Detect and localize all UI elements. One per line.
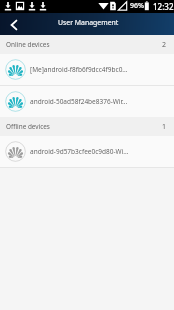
staticText: 96%: [130, 1, 144, 11]
staticText: android-50ad58f24be8376-Wir...: [30, 97, 128, 106]
button[interactable]: android-9d57b3cfee0c9d80-Wi...: [0, 136, 174, 167]
staticText: 1: [162, 122, 167, 132]
staticText: [Me]android-f8fb6f9dcc4f9bc0...: [30, 65, 128, 74]
staticText: 12:32: [153, 1, 174, 12]
staticText: User Management: [58, 18, 119, 27]
button[interactable]: [Me]android-f8fb6f9dcc4f9bc0...: [0, 54, 174, 85]
button[interactable]: android-50ad58f24be8376-Wir...: [0, 86, 174, 117]
staticText: Online devices: [6, 40, 50, 49]
staticText: Offline devices: [6, 122, 50, 131]
button[interactable]: Back: [0, 13, 26, 35]
staticText: 2: [162, 40, 167, 50]
staticText: android-9d57b3cfee0c9d80-Wi...: [30, 147, 129, 156]
